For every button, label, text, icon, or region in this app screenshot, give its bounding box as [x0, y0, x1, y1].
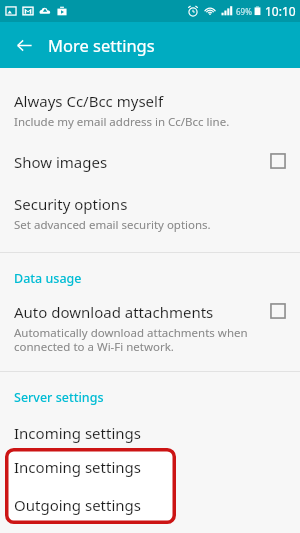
button[interactable]: Incoming settings — [0, 410, 300, 456]
button[interactable]: Back — [9, 30, 39, 60]
staticText: Set advanced email security options. — [14, 217, 211, 233]
staticText: Automatically download attachments when … — [14, 325, 248, 354]
button[interactable]: Incoming settings — [5, 448, 176, 486]
button[interactable]: Outgoing settings — [0, 456, 300, 502]
staticText: Data usage — [14, 270, 82, 287]
staticText: Security options — [14, 194, 128, 214]
staticText: Show images — [14, 152, 108, 172]
staticText: Always Cc/Bcc myself — [14, 91, 164, 111]
staticText: Server settings — [14, 389, 104, 406]
staticText: More settings — [48, 34, 155, 56]
staticText: 10:10 — [265, 3, 296, 19]
staticText: Incoming settings — [14, 423, 141, 443]
button[interactable]: Always Cc/Bcc myself — [0, 80, 300, 141]
button[interactable]: Security options — [0, 183, 300, 244]
button[interactable]: Auto download attachments — [0, 291, 300, 365]
button[interactable]: Outgoing settings — [5, 486, 176, 524]
staticText: Auto download attachments — [14, 302, 214, 322]
staticText: Include my email address in Cc/Bcc line. — [14, 114, 230, 130]
button[interactable]: Show images — [0, 141, 300, 183]
staticText: Outgoing settings — [14, 495, 141, 515]
staticText: Incoming settings — [14, 457, 141, 477]
staticText: 69% — [236, 6, 252, 17]
staticText: Outgoing settings — [14, 469, 141, 489]
